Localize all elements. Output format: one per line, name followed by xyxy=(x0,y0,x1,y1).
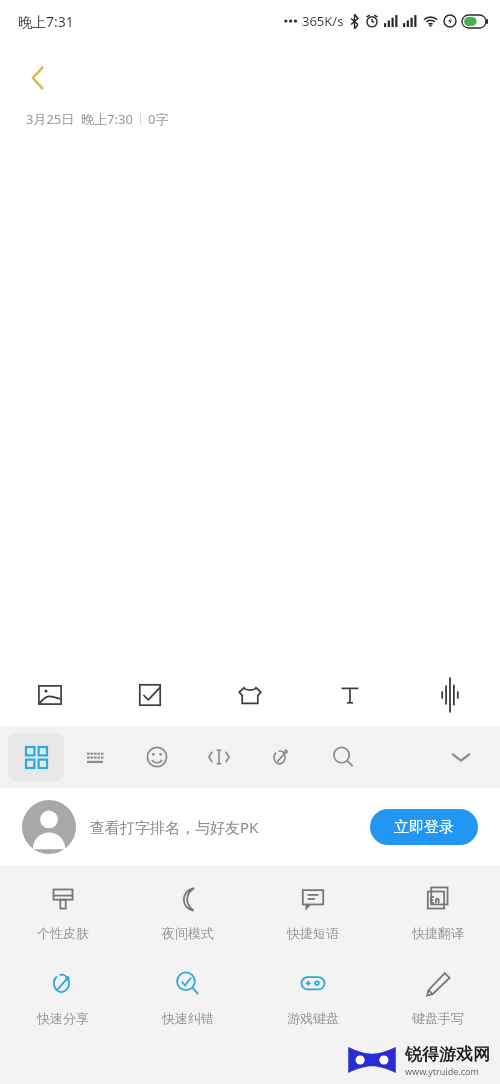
button[interactable]: 立即登录 xyxy=(370,809,478,845)
button[interactable]: 查看打字排名，与好友PK xyxy=(0,788,500,866)
staticText: 365K/s xyxy=(302,12,344,30)
staticText: 键盘手写 xyxy=(412,1010,464,1026)
button[interactable]: Collapse xyxy=(430,733,492,781)
button[interactable]: Image xyxy=(0,664,100,726)
button[interactable]: Panel xyxy=(8,733,64,781)
staticText: 0字 xyxy=(148,110,169,128)
button[interactable]: Voice xyxy=(400,664,500,726)
button[interactable]: Clip xyxy=(250,733,312,781)
staticText: 快捷翻译 xyxy=(412,925,464,941)
staticText: 夜间模式 xyxy=(162,925,214,941)
button[interactable]: Skin xyxy=(200,664,300,726)
staticText: 查看打字排名，与好友PK xyxy=(90,817,259,837)
staticText: 快速分享 xyxy=(37,1010,89,1026)
button[interactable]: 游戏键盘 xyxy=(250,961,375,1032)
button[interactable]: Back xyxy=(10,50,66,106)
button[interactable]: 快速分享 xyxy=(0,961,125,1032)
staticText: 个性皮肤 xyxy=(37,925,89,941)
button[interactable]: 夜间模式 xyxy=(125,876,250,947)
button[interactable]: 快速纠错 xyxy=(125,961,250,1032)
button[interactable]: Keyboard xyxy=(64,733,126,781)
staticText: 游戏键盘 xyxy=(287,1010,339,1026)
button[interactable]: 快捷翻译 xyxy=(375,876,500,947)
button[interactable]: 个性皮肤 xyxy=(0,876,125,947)
button[interactable]: 快捷短语 xyxy=(250,876,375,947)
staticText: 快捷短语 xyxy=(287,925,339,941)
button[interactable]: Checklist xyxy=(100,664,200,726)
staticText: 晚上7:31 xyxy=(18,12,74,31)
staticText: 锐得游戏网 xyxy=(405,1044,490,1065)
button[interactable]: Text xyxy=(300,664,400,726)
button[interactable]: 键盘手写 xyxy=(375,961,500,1032)
staticText: 3月25日 晚上7:30 xyxy=(26,110,133,128)
button[interactable]: Search xyxy=(312,733,374,781)
button[interactable]: Cursor xyxy=(188,733,250,781)
staticText: 立即登录 xyxy=(394,818,454,837)
staticText: 快速纠错 xyxy=(162,1010,214,1026)
staticText: www.ytruide.com xyxy=(405,1065,479,1077)
button[interactable]: Emoji xyxy=(126,733,188,781)
